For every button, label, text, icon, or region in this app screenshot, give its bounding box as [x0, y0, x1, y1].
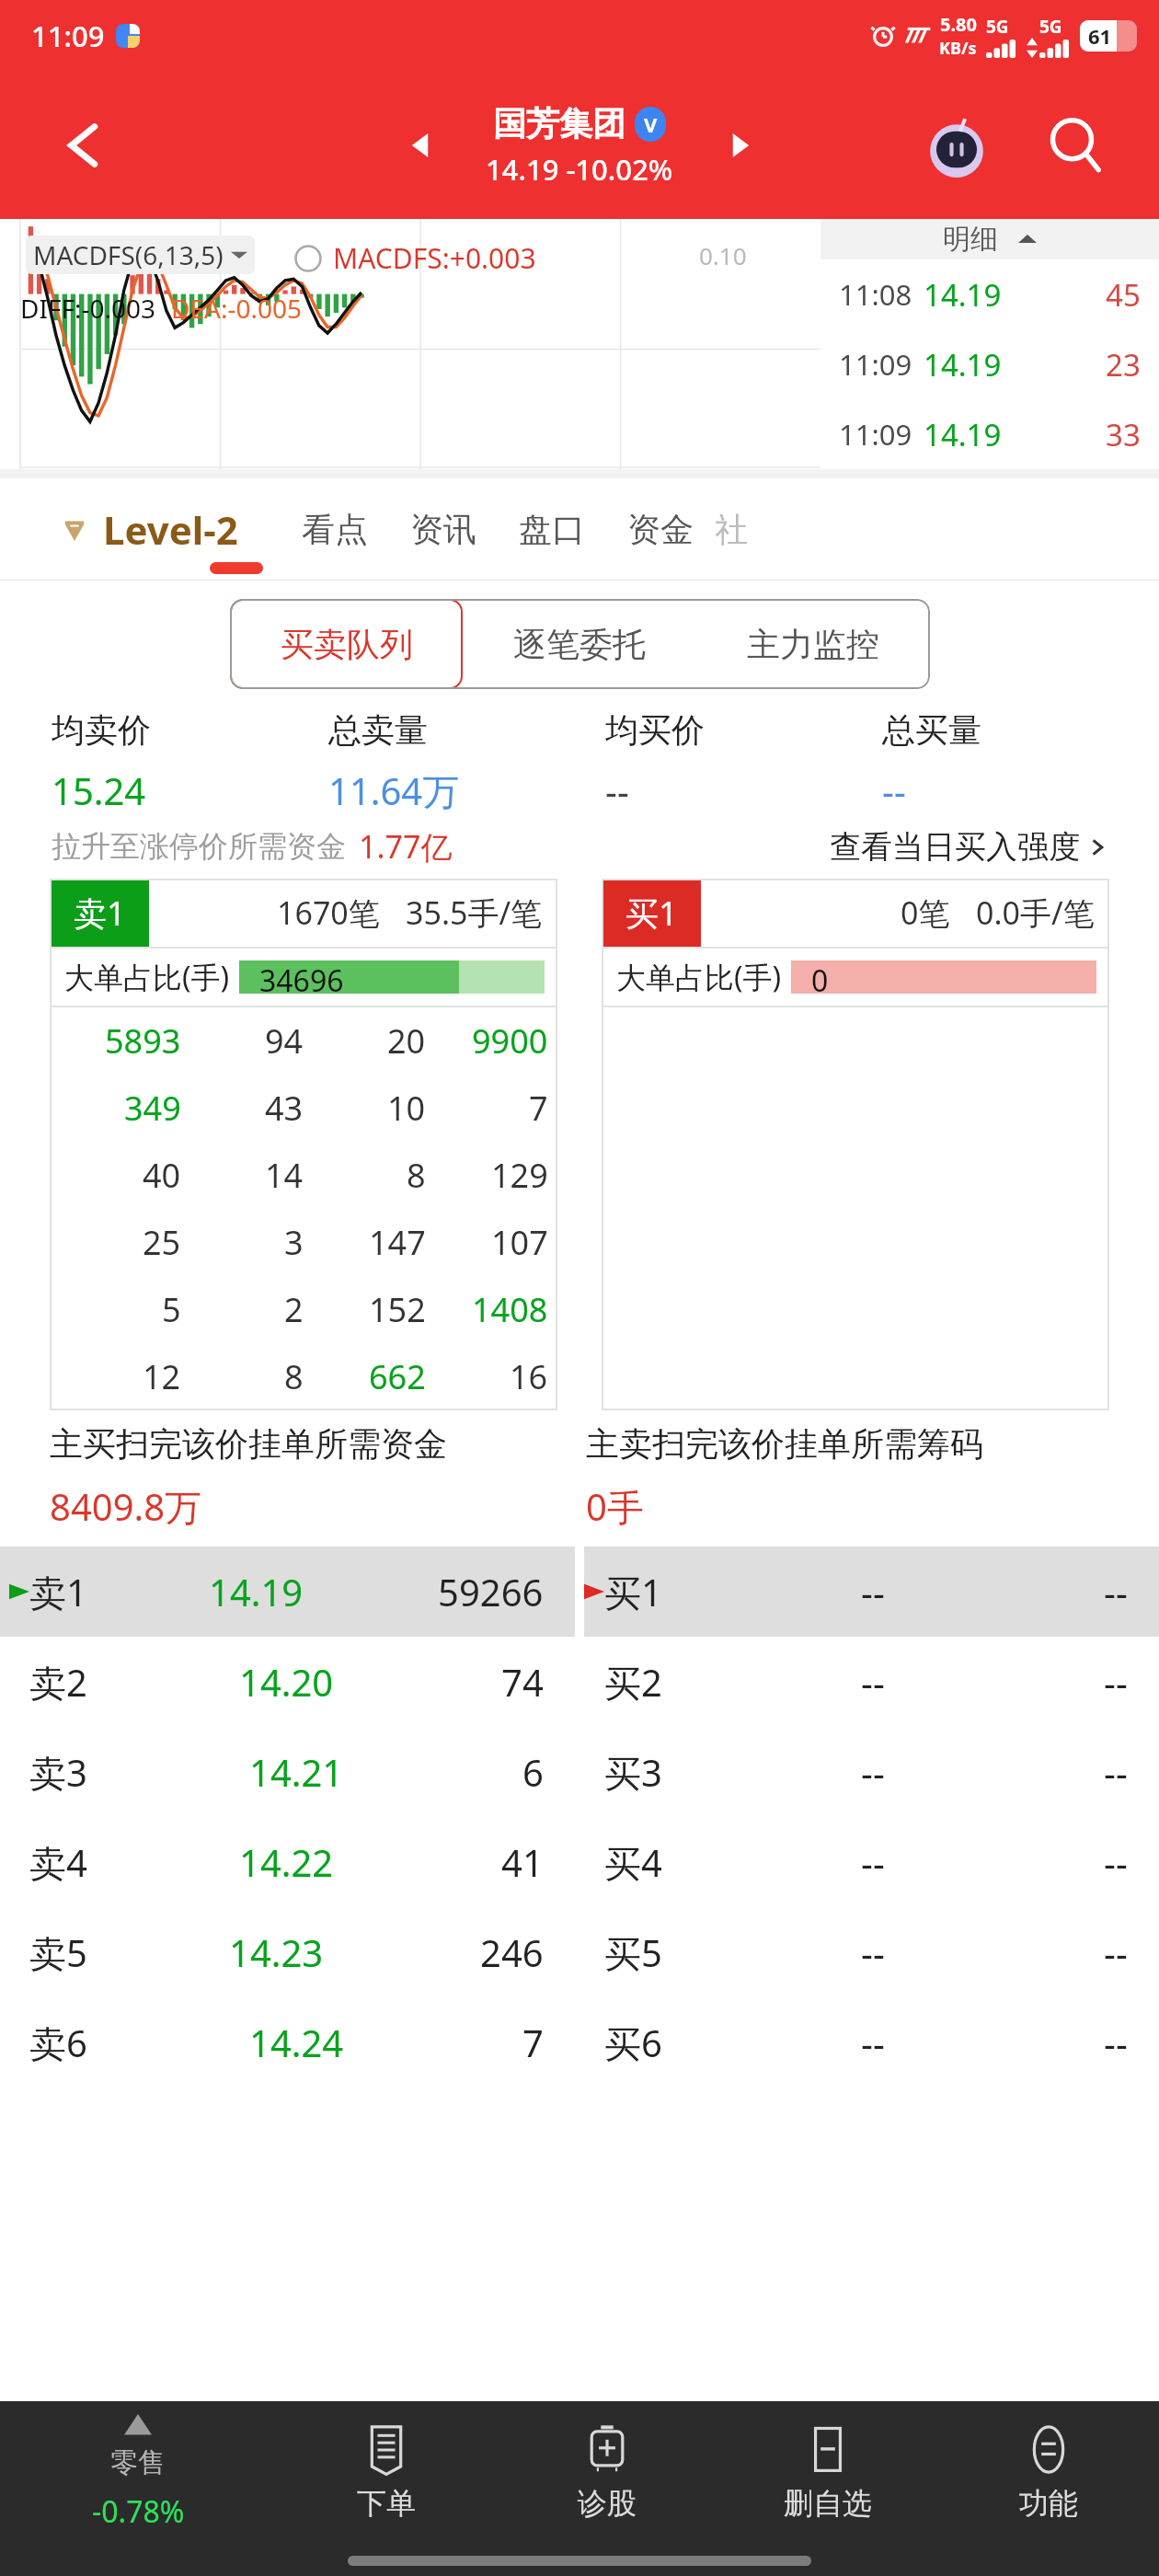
staticText: 8 [284, 1354, 304, 1399]
staticText: 卖1 [74, 891, 126, 936]
staticText: 1.77亿 [359, 825, 453, 868]
staticText: 5G [1039, 15, 1062, 39]
button[interactable]: 主力监控 [695, 599, 930, 689]
staticText: 买1 [604, 1567, 662, 1617]
staticText: -- [605, 765, 629, 815]
button[interactable]: 11:09 [839, 399, 1141, 469]
staticText: 23 [1106, 344, 1141, 385]
staticText: 33 [1106, 414, 1141, 455]
staticText: KB/s [939, 37, 977, 60]
staticText: 14.23 [229, 1927, 324, 1977]
button[interactable]: MACDFS(6,13,5) [33, 237, 247, 272]
staticText: 6 [522, 1747, 544, 1797]
staticText: 5893 [105, 1018, 181, 1064]
staticText: 明细 [943, 222, 998, 257]
button[interactable]: 资讯 [389, 509, 498, 550]
staticText: 14.19 [924, 344, 1002, 385]
button[interactable]: 功能 [938, 2401, 1159, 2545]
button[interactable]: 零售 [0, 2401, 276, 2545]
button[interactable]: 买卖队列 [230, 599, 463, 689]
staticText: 卖1 [29, 1567, 87, 1617]
button[interactable]: 卖1 [0, 1547, 1159, 1637]
staticText: 349 [124, 1086, 181, 1131]
staticText: 45 [1106, 274, 1141, 316]
staticText: 下单 [357, 2485, 416, 2522]
button[interactable]: 卖3 [0, 1727, 1159, 1817]
staticText: DIFF:-0.003 [20, 291, 156, 326]
staticText: 主力监控 [747, 624, 879, 665]
staticText: 43 [265, 1086, 304, 1131]
staticText: 卖3 [29, 1747, 87, 1798]
staticText: 5.80 [940, 12, 977, 37]
staticText: -- [861, 1747, 885, 1797]
button[interactable]: 诊股 [497, 2401, 717, 2545]
staticText: 2 [284, 1287, 304, 1332]
staticText: 107 [491, 1220, 548, 1265]
button[interactable]: 11:09 [839, 329, 1141, 399]
staticText: 卖6 [29, 2018, 87, 2068]
staticText: 5 [162, 1287, 181, 1332]
button[interactable]: Search [1043, 113, 1107, 178]
button[interactable]: Next stock [719, 124, 762, 167]
staticText: 0笔 [901, 891, 950, 934]
staticText: 7 [529, 1086, 548, 1131]
staticText: 大单占比(手) [64, 957, 230, 997]
staticText: 9900 [472, 1018, 548, 1064]
staticText: 查看当日买入强度 [830, 827, 1080, 867]
staticText: MACDFS(6,13,5) [33, 237, 224, 272]
staticText: 14.19 [924, 414, 1002, 455]
staticText: 61 [1088, 22, 1112, 50]
staticText: 35.5手/笔 [406, 891, 543, 934]
staticText: 零售 [110, 2445, 166, 2480]
button[interactable]: Level-2 [59, 503, 238, 556]
button[interactable]: 看点 [281, 509, 389, 550]
button[interactable]: 资金 [606, 509, 715, 550]
staticText: -0.78% [92, 2491, 185, 2532]
staticText: 买2 [604, 1657, 662, 1708]
staticText: 买5 [604, 1927, 662, 1978]
staticText: DEA:-0.005 [171, 291, 302, 326]
staticText: 25 [143, 1220, 181, 1265]
button[interactable]: 卖5 [0, 1907, 1159, 1997]
staticText: 14.19 -10.02% [486, 150, 673, 189]
button[interactable]: 卖1 [50, 879, 557, 1410]
button[interactable]: 删自选 [717, 2401, 938, 2545]
button[interactable]: 卖4 [0, 1817, 1159, 1907]
staticText: 74 [501, 1657, 544, 1707]
button[interactable]: 卖6 [0, 1997, 1159, 2087]
button[interactable]: 11:08 [839, 259, 1141, 329]
button[interactable]: 下单 [276, 2401, 497, 2545]
staticText: -- [861, 1837, 885, 1887]
staticText: 662 [369, 1354, 426, 1399]
button[interactable]: Previous stock [399, 124, 442, 167]
staticText: 3 [284, 1220, 304, 1265]
staticText: 卖2 [29, 1657, 87, 1708]
staticText: 14.20 [239, 1657, 334, 1707]
button[interactable]: 买1 [602, 879, 1109, 1410]
staticText: 买6 [604, 2018, 662, 2068]
staticText: 11:09 [839, 415, 912, 454]
staticText: -- [1104, 1927, 1128, 1977]
button[interactable]: 逐笔委托 [463, 599, 695, 689]
staticText: -- [861, 1927, 885, 1977]
staticText: 0.0手/笔 [976, 891, 1095, 934]
staticText: 诊股 [578, 2485, 637, 2522]
button[interactable]: 卖2 [0, 1637, 1159, 1727]
button[interactable]: AI assistant [922, 110, 992, 180]
button[interactable]: 盘口 [498, 509, 606, 550]
staticText: -- [1104, 1567, 1128, 1616]
staticText: 11:08 [839, 275, 912, 314]
button[interactable]: Back [57, 118, 112, 173]
staticText: 卖4 [29, 1837, 87, 1888]
button[interactable]: 明细 [820, 219, 1159, 259]
staticText: 16 [510, 1354, 548, 1399]
button[interactable]: 社 [715, 509, 748, 550]
staticText: 246 [480, 1927, 544, 1977]
button[interactable]: 查看当日买入强度 [830, 827, 1107, 867]
staticText: 买1 [625, 891, 678, 936]
staticText: Level-2 [103, 503, 238, 556]
staticText: 均买价 [605, 709, 705, 751]
staticText: 41 [501, 1837, 544, 1887]
staticText: 买4 [604, 1837, 662, 1888]
staticText: 逐笔委托 [513, 624, 646, 665]
